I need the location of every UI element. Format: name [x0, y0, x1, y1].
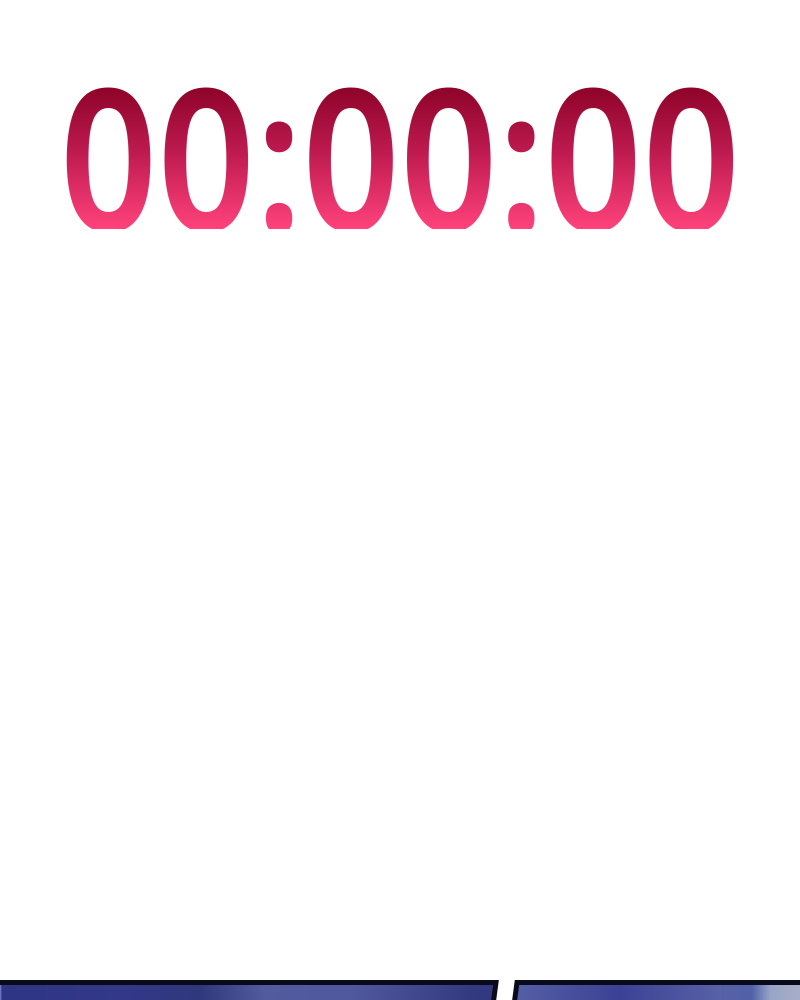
button[interactable]: Start	[517, 982, 800, 1000]
button[interactable]: Reset	[0, 982, 496, 1000]
